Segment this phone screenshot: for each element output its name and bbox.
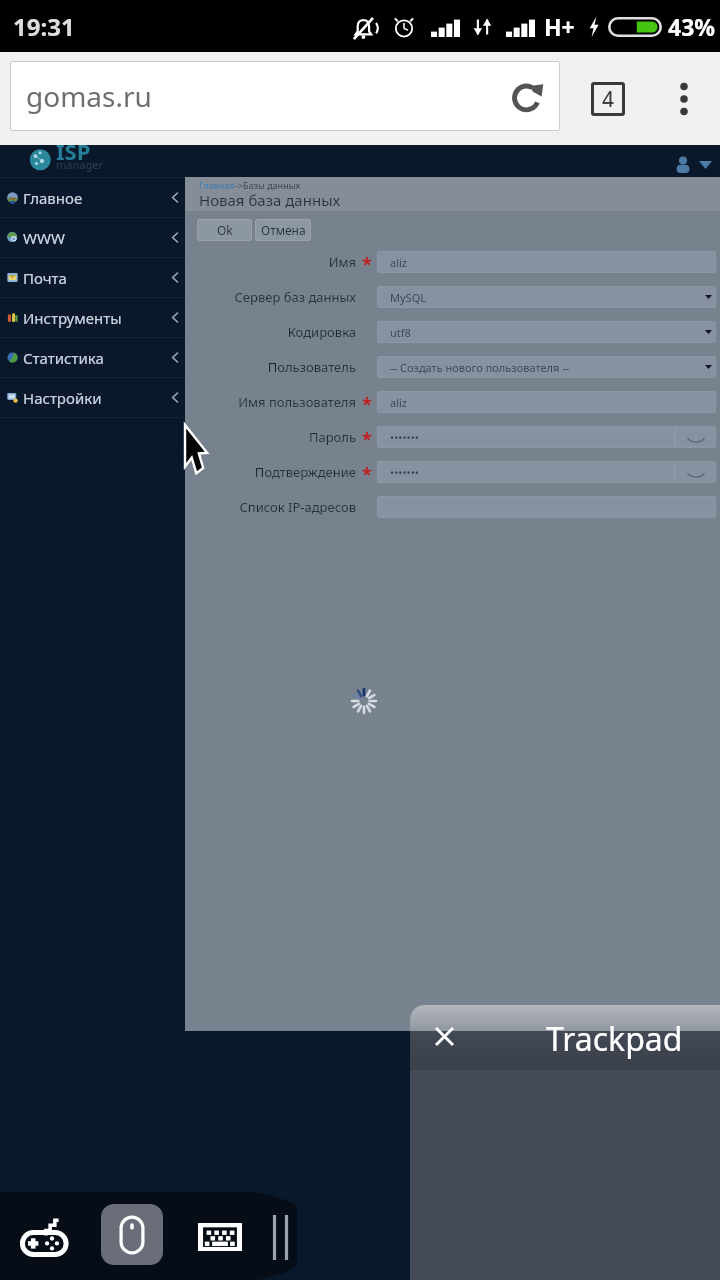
staticText: Пользователь <box>185 358 356 376</box>
staticText: ••••••• <box>390 430 419 445</box>
button[interactable]: ••••••• <box>377 461 675 483</box>
button[interactable]: aliz <box>377 251 716 273</box>
staticText: Инструменты <box>23 308 122 328</box>
staticText: Отмена <box>261 222 306 238</box>
staticText: ISP <box>56 136 91 166</box>
staticText: Список IP-адресов <box>185 498 356 516</box>
staticText: H+ <box>544 11 575 42</box>
button[interactable]: Mouse <box>101 1204 163 1265</box>
staticText: Пароль <box>185 428 356 446</box>
button[interactable]: Настройки <box>0 378 185 417</box>
button[interactable]: Show password <box>675 426 716 448</box>
button[interactable]: Reload <box>508 74 552 118</box>
staticText: * <box>362 427 372 452</box>
staticText: * <box>362 392 372 417</box>
staticText: WWW <box>23 228 65 248</box>
staticText: -- Создать нового пользователя -- <box>390 360 570 375</box>
staticText: * <box>362 462 372 487</box>
staticText: MySQL <box>390 290 426 305</box>
staticText: manager <box>56 157 103 172</box>
staticText: 43% <box>668 11 716 42</box>
button[interactable]: aliz <box>377 391 716 413</box>
staticText: ->Базы данных <box>235 179 301 191</box>
staticText: 19:31 <box>13 10 75 43</box>
button[interactable]: More options <box>658 73 710 125</box>
staticText: ••••••• <box>390 465 419 480</box>
staticText: Ok <box>217 222 233 238</box>
button[interactable]: ••••••• <box>377 426 675 448</box>
button[interactable]: Tabs <box>580 71 636 127</box>
button[interactable]: Gamepad <box>13 1206 75 1268</box>
button[interactable]: Главное <box>0 178 185 217</box>
button[interactable]: Ok <box>197 219 252 241</box>
staticText: aliz <box>390 395 408 410</box>
staticText: Настройки <box>23 388 102 408</box>
staticText: Сервер баз данных <box>185 288 356 306</box>
staticText: gomas.ru <box>26 77 152 115</box>
staticText: aliz <box>390 255 408 270</box>
button[interactable]: MySQL <box>377 286 716 308</box>
staticText: Статистика <box>23 348 104 368</box>
staticText: Почта <box>23 268 67 288</box>
staticText: * <box>362 252 372 277</box>
button[interactable]: Close <box>430 1022 458 1050</box>
staticText: Главное <box>23 188 83 208</box>
button[interactable]: utf8 <box>377 321 716 343</box>
button[interactable]: Инструменты <box>0 298 185 337</box>
button[interactable]: Статистика <box>0 338 185 377</box>
button[interactable]: Pause <box>266 1206 294 1268</box>
button[interactable]: -- Создать нового пользователя -- <box>377 356 716 378</box>
button[interactable]: Отмена <box>255 219 311 241</box>
staticText: Trackpad <box>546 1017 683 1061</box>
staticText: Главная <box>199 179 235 191</box>
staticText: Имя пользователя <box>185 393 356 411</box>
button[interactable]: Keyboard <box>189 1206 251 1268</box>
button[interactable]: Почта <box>0 258 185 297</box>
staticText: Имя <box>185 253 356 271</box>
staticText: Новая база данных <box>199 190 341 210</box>
staticText: Подтверждение <box>185 463 356 481</box>
button[interactable]: gomas.ru <box>10 61 560 131</box>
button[interactable]: WWW <box>0 218 185 257</box>
button[interactable]: Show password <box>675 461 716 483</box>
staticText: utf8 <box>390 325 411 340</box>
staticText: 4 <box>602 85 615 114</box>
staticText: Кодировка <box>185 323 356 341</box>
